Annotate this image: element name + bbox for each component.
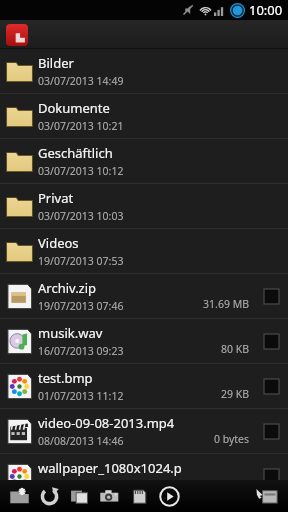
staticText: Bilder (38, 54, 74, 72)
button[interactable]: New folder (4, 481, 34, 511)
staticText: 10:00 (249, 1, 283, 19)
button[interactable]: Bilder (0, 49, 288, 94)
staticText: 19/07/2013 07:46 (38, 299, 124, 313)
staticText: test.bmp (38, 369, 93, 387)
button[interactable]: Select wallpaper_1080x1024.png (255, 469, 288, 484)
button[interactable]: Archiv.zip (0, 274, 288, 319)
staticText: Archiv.zip (38, 279, 97, 297)
staticText: 31.69 MB (183, 297, 249, 311)
button[interactable]: Eject storage (252, 481, 282, 511)
button[interactable]: wallpaper_1080x1024.png (0, 454, 288, 499)
staticText: 03/07/2013 10:12 (38, 164, 124, 178)
button[interactable]: SD card (124, 481, 154, 511)
button[interactable]: Camera (94, 481, 124, 511)
staticText: 16/07/2013 09:23 (38, 344, 124, 358)
staticText: 1.02 MB (183, 477, 249, 491)
staticText: 03/07/2013 10:03 (38, 209, 124, 223)
button[interactable]: video-09-08-2013.mp4 (0, 409, 288, 454)
button[interactable]: musik.wav (0, 319, 288, 364)
button[interactable]: Videos (0, 229, 288, 274)
button[interactable]: Select test.bmp (255, 379, 288, 394)
button[interactable]: Dokumente (0, 94, 288, 139)
staticText: Dokumente (38, 99, 110, 117)
staticText: 01/07/2013 11:12 (38, 389, 124, 403)
staticText: musik.wav (38, 324, 103, 342)
button[interactable] (0, 20, 288, 49)
button[interactable]: Refresh (34, 481, 64, 511)
staticText: 29 KB (183, 387, 249, 401)
staticText: 03/07/2013 10:21 (38, 119, 124, 133)
staticText: Geschäftlich (38, 144, 113, 162)
staticText: Privat (38, 189, 74, 207)
button[interactable]: Privat (0, 184, 288, 229)
staticText: video-09-08-2013.mp4 (38, 414, 175, 432)
staticText: 03/07/2013 14:49 (38, 74, 124, 88)
button[interactable]: Select video-09-08-2013.mp4 (255, 424, 288, 439)
staticText: 08/08/2013 14:46 (38, 434, 124, 448)
button[interactable]: Play (154, 481, 184, 511)
staticText: 19/07/2013 07:53 (38, 254, 124, 268)
button[interactable]: test.bmp (0, 364, 288, 409)
button[interactable]: Select Archiv.zip (255, 289, 288, 304)
button[interactable]: Geschäftlich (0, 139, 288, 184)
staticText: 0 bytes (183, 432, 249, 446)
staticText: 80 KB (183, 342, 249, 356)
staticText: Videos (38, 234, 79, 252)
button[interactable]: Copy (64, 481, 94, 511)
staticText: 19/07/2013 07:22 (38, 479, 124, 493)
staticText: wallpaper_1080x1024.png (38, 459, 183, 477)
button[interactable]: Select musik.wav (255, 334, 288, 349)
